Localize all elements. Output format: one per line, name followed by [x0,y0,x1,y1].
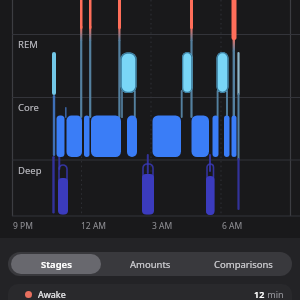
staticText: Core [18,101,39,114]
staticText: 3 AM [152,220,173,232]
staticText: Stages [41,258,72,271]
button[interactable]: Stages [11,254,101,274]
staticText: Comparisons [214,258,273,271]
staticText: Amounts [130,258,171,271]
button[interactable]: Comparisons [197,254,290,274]
button[interactable]: Amounts [103,254,197,274]
staticText: Awake [38,288,66,300]
staticText: min [265,288,284,300]
button[interactable]: Awake [8,284,292,300]
staticText: 12 AM [81,220,107,232]
staticText: 6 AM [222,220,243,232]
staticText: Deep [18,164,42,177]
staticText: REM [18,38,38,51]
staticText: 12 [254,288,265,300]
staticText: 9 PM [13,220,33,232]
